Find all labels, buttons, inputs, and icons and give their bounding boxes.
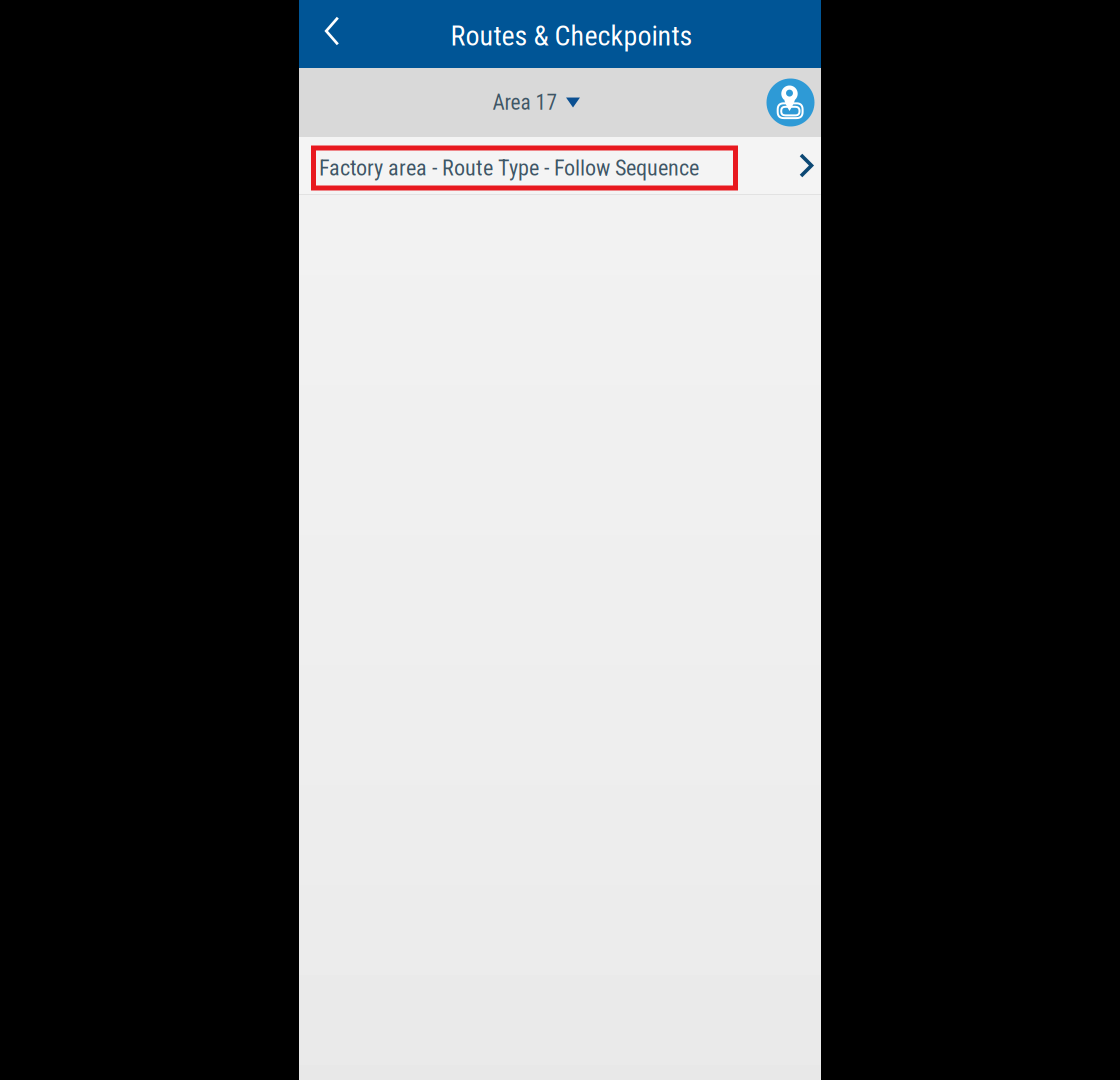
button[interactable]: Back — [299, 0, 365, 68]
button[interactable]: Factory area - Route Type - Follow Seque… — [299, 137, 821, 195]
staticText: Routes & Checkpoints — [450, 20, 692, 52]
button[interactable]: Area 17 — [299, 68, 760, 137]
staticText: Area 17 — [492, 90, 557, 115]
button[interactable]: Show checkpoints on map — [760, 68, 821, 137]
staticText: Factory area - Route Type - Follow Seque… — [319, 155, 699, 181]
